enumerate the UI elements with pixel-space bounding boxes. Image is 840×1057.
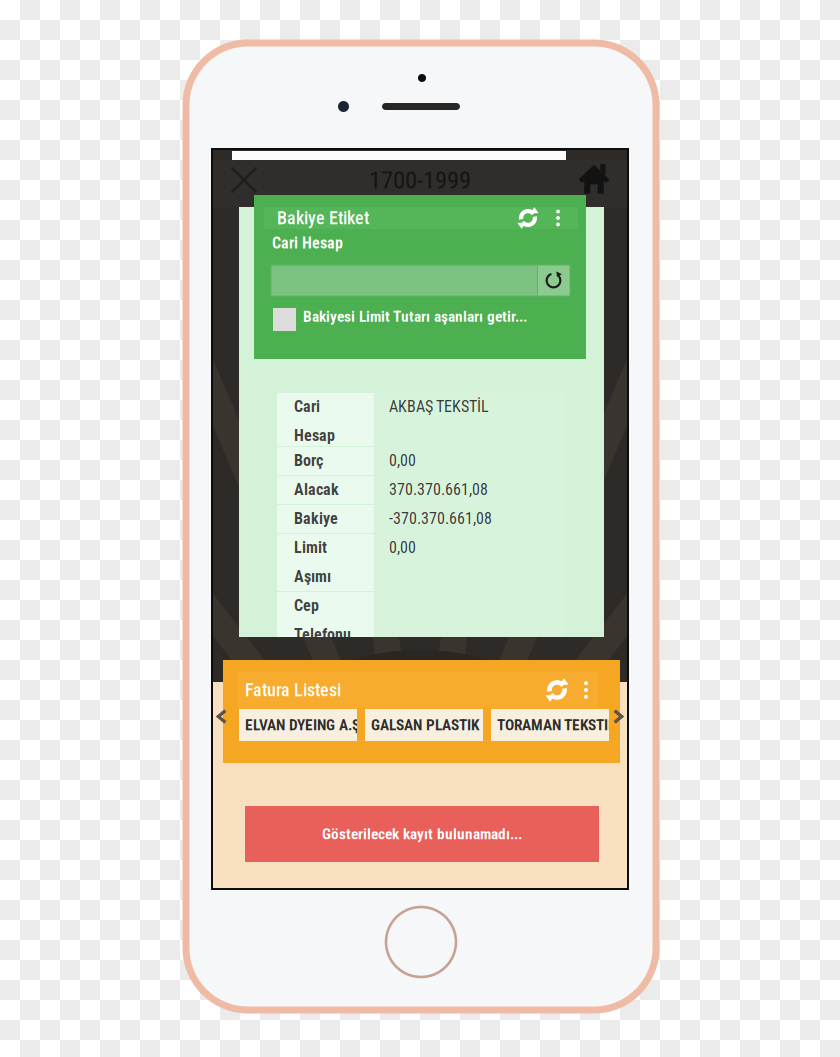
staticText: 0,00 [389,538,416,557]
button[interactable]: GALSAN PLASTIK A [365,709,483,741]
staticText: GALSAN PLASTIK A [371,716,492,734]
staticText: TORAMAN TEKSTIL [497,716,615,734]
staticText: Fatura Listesi [245,679,341,701]
staticText: Gösterilecek kayıt bulunamadı... [322,825,522,843]
button[interactable]: More options [547,204,569,232]
button[interactable]: TORAMAN TEKSTIL [491,709,609,741]
staticText: Borç [294,451,323,470]
staticText: Hesap [294,426,335,445]
button[interactable]: More options [575,674,597,706]
button[interactable]: ELVAN DYEING A.Ş. [239,709,357,741]
staticText: Limit [294,538,327,557]
button[interactable]: Refresh [513,204,543,232]
staticText: Bakiyesi Limit Tutarı aşanları getir... [303,307,527,325]
staticText: 0,00 [389,451,416,470]
button[interactable]: Refresh invoice list [541,674,573,706]
staticText: Telefonu [294,625,351,644]
staticText: 1700-1999 [369,165,471,194]
staticText: Aşımı [294,567,331,586]
staticText: AKBAŞ TEKSTİL [389,397,489,416]
button[interactable]: Close [220,159,268,201]
staticText: Bakiye Etiket [277,207,369,229]
staticText: Cep [294,596,319,615]
staticText: Cari Hesap [272,234,343,252]
button[interactable]: Home [570,157,618,199]
staticText: Alacak [294,480,339,499]
staticText: -370.370.661,08 [389,509,492,528]
button[interactable]: Gösterilecek kayıt bulunamadı... [245,806,599,862]
staticText: ELVAN DYEING A.Ş. [245,716,364,734]
staticText: 370.370.661,08 [389,480,488,499]
staticText: Cari [294,397,320,416]
staticText: Bakiye [294,509,338,528]
